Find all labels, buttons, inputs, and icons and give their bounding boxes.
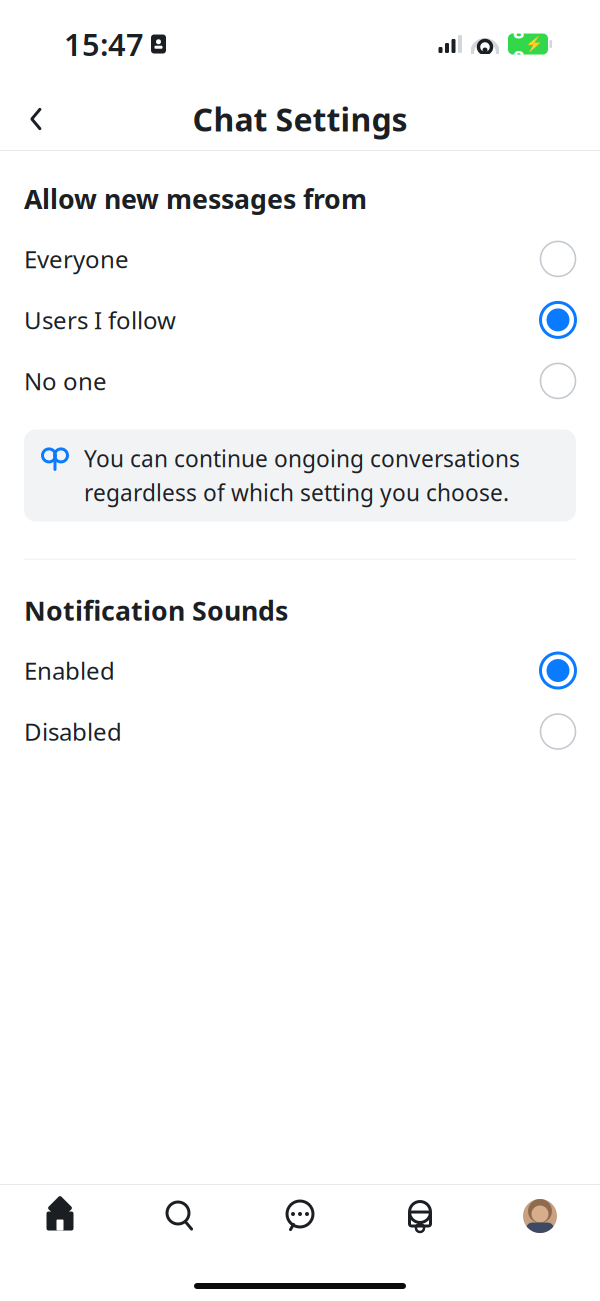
button[interactable]: Notifications [360, 1185, 480, 1247]
button[interactable]: Back [8, 91, 64, 147]
button[interactable]: No one [0, 350, 600, 411]
staticText: Users I follow [24, 304, 176, 336]
staticText: No one [24, 365, 107, 397]
staticText: 88 [513, 17, 524, 70]
staticText: Disabled [24, 716, 122, 747]
staticText: Enabled [24, 655, 115, 686]
staticText: Chat Settings [192, 98, 407, 140]
button[interactable]: Disabled [0, 701, 600, 762]
button[interactable]: Users I follow [0, 289, 600, 350]
staticText: Everyone [24, 243, 129, 275]
staticText: 15:47 [64, 24, 144, 64]
button[interactable]: Messages [240, 1185, 360, 1247]
button[interactable]: Everyone [0, 228, 600, 289]
button[interactable]: Enabled [0, 640, 600, 701]
staticText: Allow new messages from [24, 181, 367, 216]
staticText: You can continue ongoing conversations r… [84, 443, 520, 508]
button[interactable]: Search [120, 1185, 240, 1247]
staticText: ⚡ [525, 36, 543, 52]
button[interactable]: Home [0, 1185, 120, 1247]
button[interactable]: Profile [480, 1185, 600, 1247]
staticText: Notification Sounds [24, 593, 288, 628]
